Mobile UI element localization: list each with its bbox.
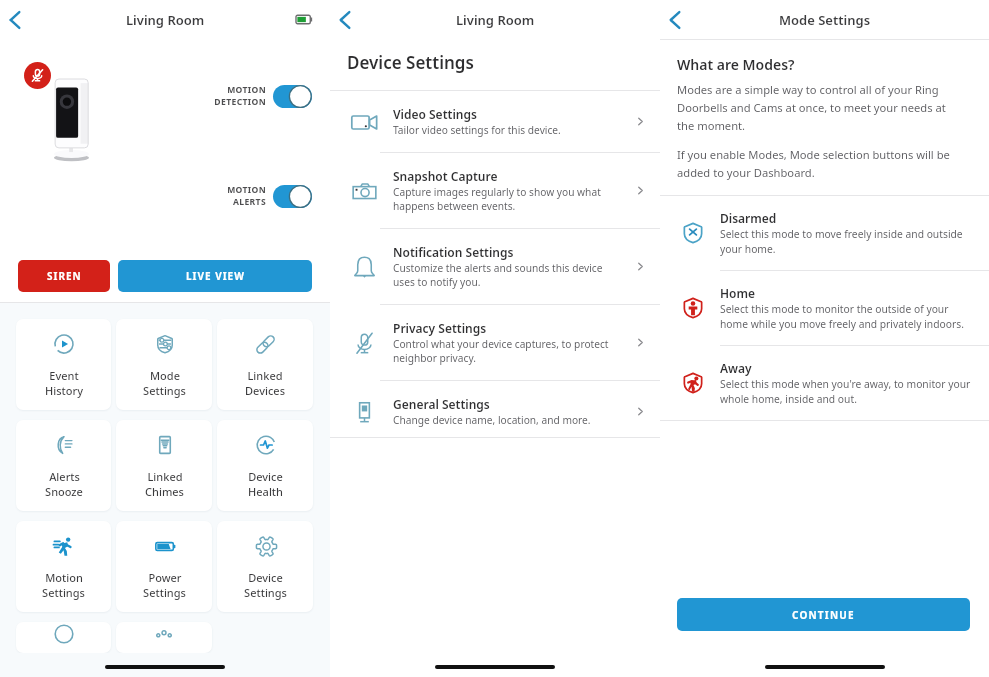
- button[interactable]: Power: [116, 521, 212, 612]
- staticText: Disarmed: [720, 210, 777, 226]
- staticText: Capture images regularly to show you wha…: [393, 185, 615, 213]
- staticText: Device Settings: [347, 51, 474, 74]
- staticText: SIREN: [47, 269, 82, 283]
- staticText: CONTINUE: [792, 608, 855, 622]
- staticText: What are Modes?: [677, 55, 795, 74]
- button[interactable]: Privacy Settings: [330, 305, 660, 380]
- staticText: LIVE VIEW: [186, 269, 245, 283]
- button[interactable]: Help: [16, 622, 111, 653]
- staticText: Linked: [147, 469, 183, 484]
- button[interactable]: Notification Settings: [330, 229, 660, 304]
- staticText: Power: [148, 570, 182, 585]
- button[interactable]: LIVE VIEW: [118, 260, 312, 292]
- staticText: Snooze: [45, 484, 83, 499]
- staticText: Select this mode to move freely inside a…: [720, 227, 974, 256]
- button[interactable]: Device: [217, 420, 313, 511]
- staticText: Modes are a simple way to control all of…: [677, 82, 963, 133]
- staticText: Notification Settings: [393, 244, 514, 260]
- button[interactable]: Snapshot Capture: [330, 153, 660, 228]
- staticText: Video Settings: [393, 106, 477, 122]
- button[interactable]: Event: [16, 319, 111, 410]
- staticText: General Settings: [393, 396, 490, 412]
- staticText: Select this mode when you're away, to mo…: [720, 377, 974, 406]
- button[interactable]: Linked: [116, 420, 212, 511]
- button[interactable]: Linked: [217, 319, 313, 410]
- staticText: Settings: [143, 383, 186, 398]
- button[interactable]: Motion: [16, 521, 111, 612]
- staticText: ALERTS: [233, 196, 266, 208]
- button[interactable]: Video Settings: [330, 91, 660, 152]
- button[interactable]: More: [116, 622, 212, 653]
- staticText: Mode: [150, 368, 180, 383]
- staticText: Linked: [247, 368, 283, 383]
- staticText: Tailor video settings for this device.: [393, 123, 561, 137]
- button[interactable]: Back: [0, 2, 33, 38]
- staticText: Snapshot Capture: [393, 168, 498, 184]
- staticText: Devices: [245, 383, 285, 398]
- staticText: MOTION: [227, 84, 266, 96]
- staticText: Customize the alerts and sounds this dev…: [393, 261, 615, 289]
- button[interactable]: Back: [657, 2, 693, 38]
- staticText: Home: [720, 285, 756, 301]
- staticText: Living Room: [126, 11, 205, 29]
- button[interactable]: Away: [660, 346, 989, 420]
- button[interactable]: CONTINUE: [677, 598, 970, 631]
- staticText: Change device name, location, and more.: [393, 413, 591, 427]
- staticText: MOTION: [227, 184, 266, 196]
- staticText: Device: [248, 469, 283, 484]
- button[interactable]: Disarmed: [660, 196, 989, 270]
- button[interactable]: General Settings: [330, 381, 660, 437]
- staticText: If you enable Modes, Mode selection butt…: [677, 147, 963, 180]
- staticText: Privacy Settings: [393, 320, 487, 336]
- staticText: DETECTION: [214, 96, 266, 108]
- staticText: Device: [248, 570, 283, 585]
- staticText: Settings: [244, 585, 287, 600]
- staticText: Alerts: [49, 469, 80, 484]
- button[interactable]: Back: [327, 2, 363, 38]
- button[interactable]: Device: [217, 521, 313, 612]
- button[interactable]: MOTION: [214, 84, 312, 108]
- button[interactable]: Mode: [116, 319, 212, 410]
- staticText: Living Room: [456, 11, 535, 29]
- staticText: History: [45, 383, 83, 398]
- staticText: Motion: [45, 570, 83, 585]
- staticText: Away: [720, 360, 752, 376]
- button[interactable]: Home: [660, 271, 989, 345]
- staticText: Event: [49, 368, 79, 383]
- staticText: Chimes: [145, 484, 184, 499]
- staticText: Settings: [42, 585, 85, 600]
- staticText: Mode Settings: [779, 11, 871, 29]
- staticText: Settings: [143, 585, 186, 600]
- button[interactable]: SIREN: [18, 260, 110, 292]
- button[interactable]: Microphone muted: [24, 62, 51, 89]
- staticText: Health: [248, 484, 283, 499]
- button[interactable]: Alerts: [16, 420, 111, 511]
- button[interactable]: MOTION: [227, 184, 312, 208]
- staticText: Control what your device captures, to pr…: [393, 337, 615, 365]
- staticText: Select this mode to monitor the outside …: [720, 302, 974, 331]
